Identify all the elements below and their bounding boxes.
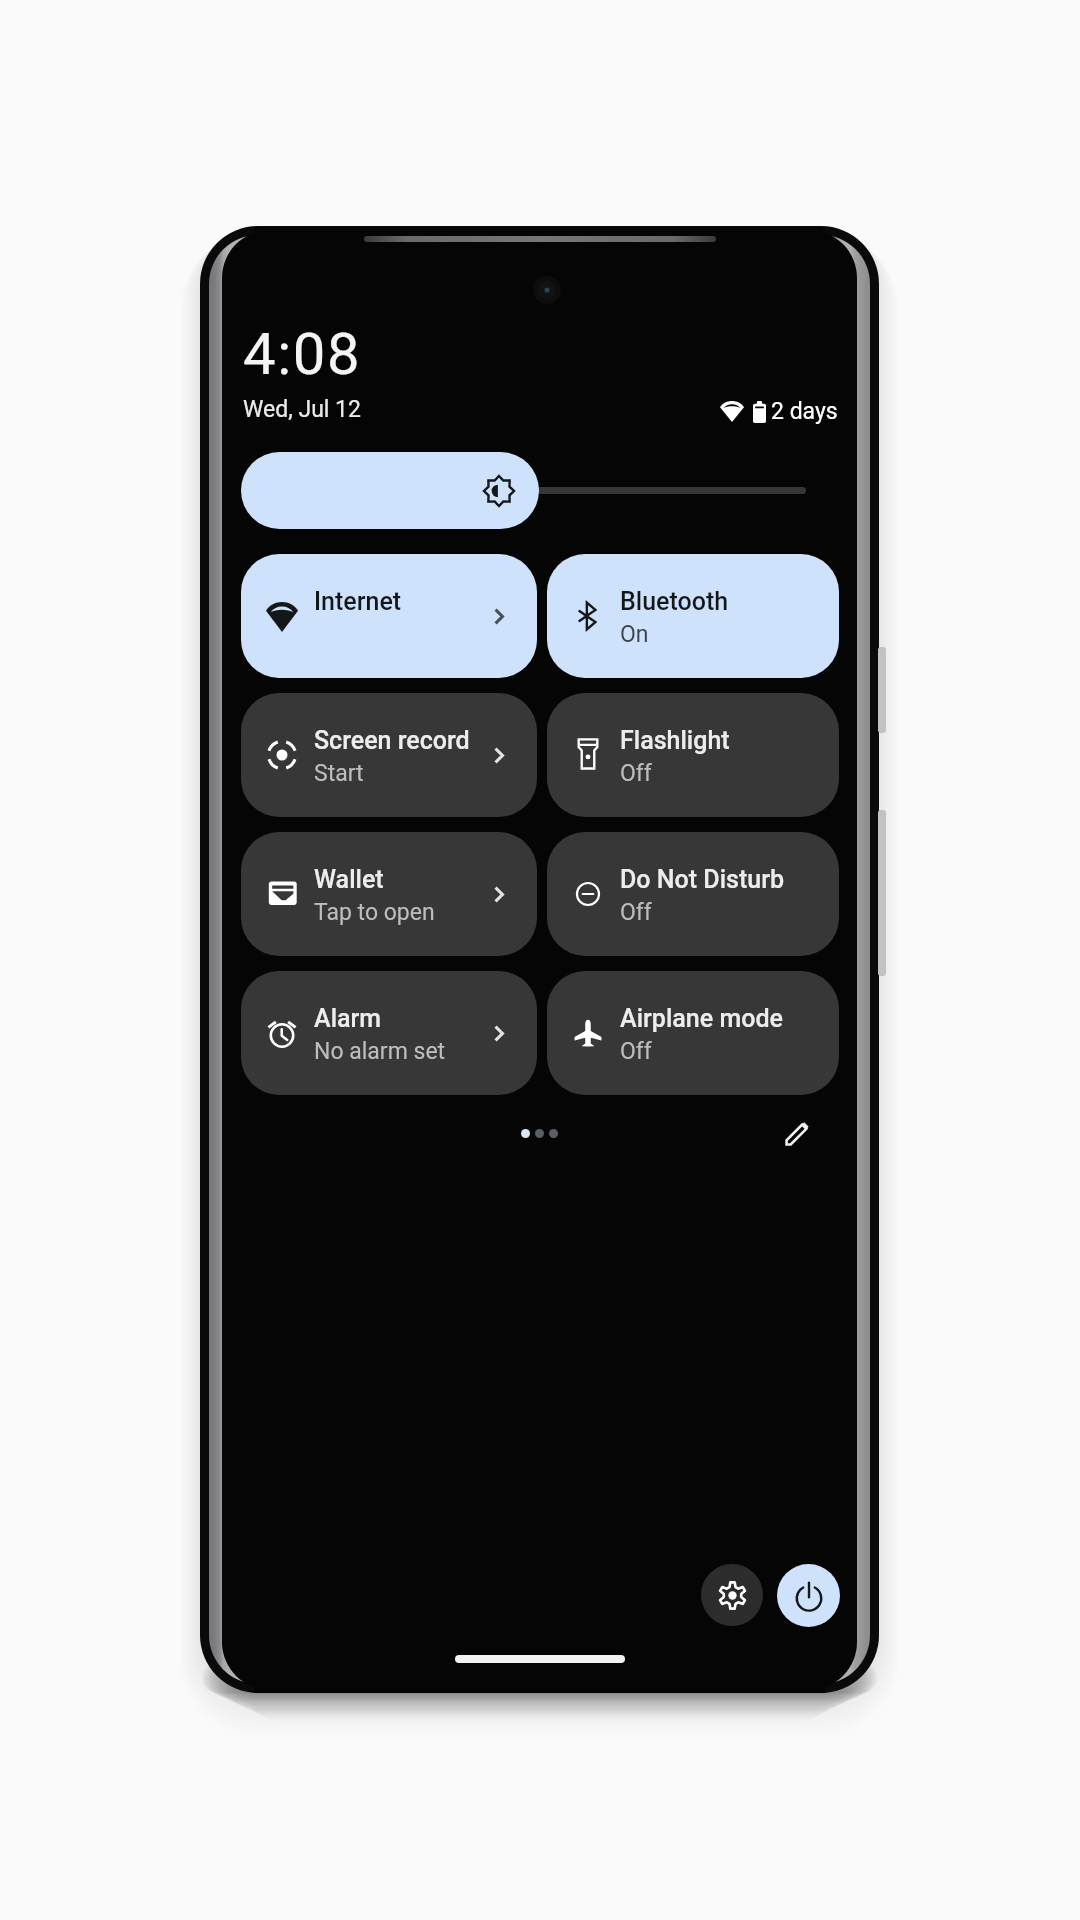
staticText: Screen record [314, 726, 470, 755]
staticText: Off [620, 760, 652, 787]
staticText: 4:08 [243, 320, 362, 388]
staticText: Bluetooth [620, 587, 729, 616]
button[interactable]: Do Not Disturb [547, 832, 839, 956]
button[interactable]: Power [777, 1564, 840, 1627]
button[interactable]: Bluetooth [547, 554, 839, 678]
staticText: Tap to open [314, 899, 435, 926]
button[interactable]: Internet [241, 554, 537, 678]
button[interactable]: Screen record [241, 693, 537, 817]
button[interactable]: Flashlight [547, 693, 839, 817]
staticText: Do Not Disturb [620, 865, 785, 894]
button[interactable]: Settings [701, 1564, 763, 1626]
button[interactable]: Brightness [241, 452, 539, 529]
button[interactable]: Airplane mode [547, 971, 839, 1095]
staticText: Airplane mode [620, 1004, 783, 1033]
staticText: 2 days [771, 398, 838, 425]
button[interactable]: Edit tiles [774, 1109, 822, 1157]
staticText: Internet [314, 587, 402, 616]
button[interactable]: Wallet [241, 832, 537, 956]
staticText: On [620, 621, 649, 648]
staticText: Wallet [314, 865, 384, 894]
staticText: Off [620, 899, 652, 926]
staticText: Alarm [314, 1004, 382, 1033]
button[interactable]: Alarm [241, 971, 537, 1095]
staticText: Wed, Jul 12 [243, 396, 361, 423]
staticText: No alarm set [314, 1038, 446, 1065]
staticText: Flashlight [620, 726, 730, 755]
staticText: Start [314, 760, 364, 787]
staticText: Off [620, 1038, 652, 1065]
